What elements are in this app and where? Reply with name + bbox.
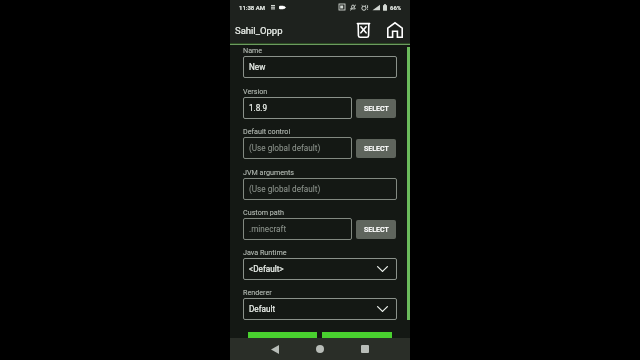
staticText: SELECT bbox=[364, 105, 389, 113]
staticText: Default bbox=[249, 304, 276, 314]
button[interactable]: .minecraft bbox=[243, 218, 352, 240]
staticText: 11:38 AM bbox=[239, 4, 265, 11]
staticText: SELECT bbox=[364, 145, 389, 153]
button[interactable]: Delete profile bbox=[353, 22, 373, 38]
staticText: JVM arguments bbox=[243, 168, 295, 176]
staticText: Sahil_Oppp bbox=[235, 25, 283, 36]
staticText: Custom path bbox=[243, 208, 285, 216]
button[interactable]: SELECT bbox=[356, 220, 396, 239]
staticText: .minecraft bbox=[249, 224, 287, 234]
button[interactable]: New bbox=[243, 56, 397, 78]
staticText: <Default> bbox=[249, 264, 284, 274]
staticText: (Use global default) bbox=[249, 184, 321, 194]
button[interactable]: (Use global default) bbox=[243, 137, 352, 159]
staticText: 1.8.9 bbox=[249, 103, 268, 113]
staticText: Name bbox=[243, 46, 263, 54]
staticText: Java Runtime bbox=[243, 248, 287, 256]
staticText: SELECT bbox=[364, 226, 389, 234]
button[interactable]: Back bbox=[265, 339, 285, 359]
button[interactable]: SELECT bbox=[356, 99, 396, 118]
staticText: New bbox=[249, 62, 266, 72]
button[interactable]: Default bbox=[243, 298, 397, 320]
button[interactable]: SELECT bbox=[356, 139, 396, 158]
button[interactable]: Recent apps bbox=[355, 339, 375, 359]
staticText: Default control bbox=[243, 127, 291, 135]
staticText: Renderer bbox=[243, 288, 272, 296]
staticText: (Use global default) bbox=[249, 143, 321, 153]
button[interactable]: Home bbox=[310, 339, 330, 359]
staticText: Version bbox=[243, 87, 268, 95]
button[interactable]: (Use global default) bbox=[243, 178, 397, 200]
button[interactable]: <Default> bbox=[243, 258, 397, 280]
button[interactable]: 1.8.9 bbox=[243, 97, 352, 119]
staticText: 66% bbox=[390, 4, 402, 11]
button[interactable]: Home bbox=[385, 22, 405, 38]
